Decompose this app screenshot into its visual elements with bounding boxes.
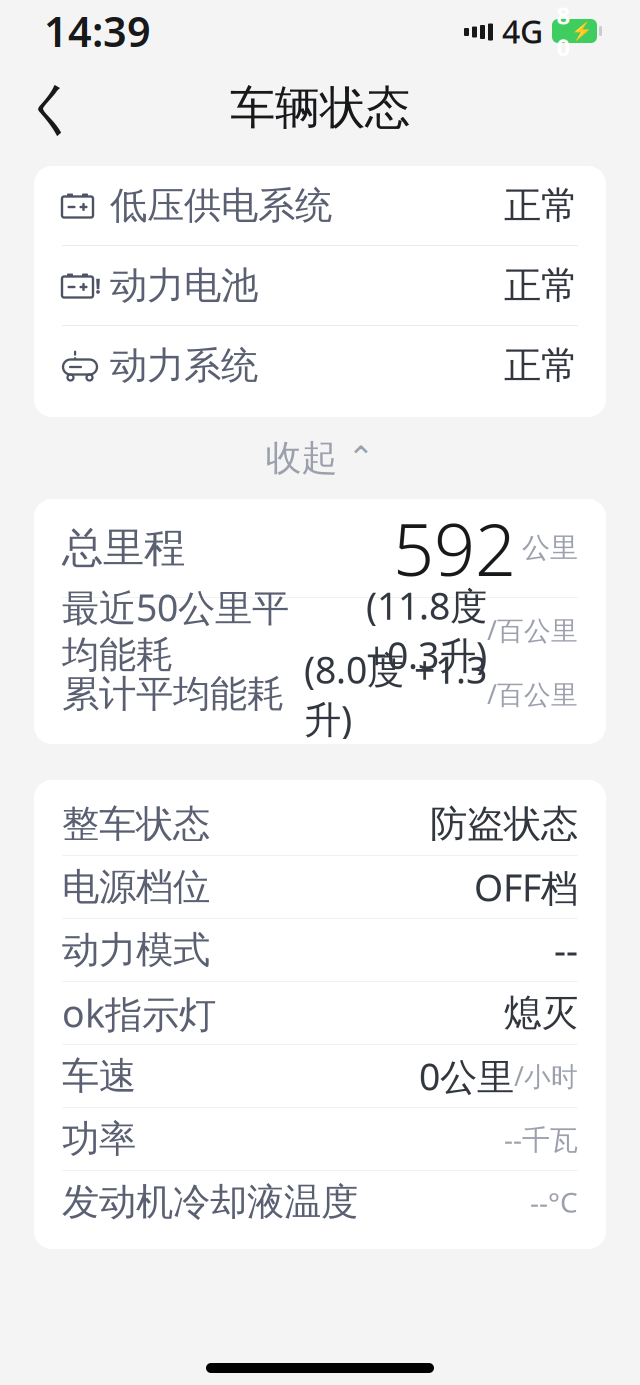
button[interactable]: 整车状态 xyxy=(34,793,606,855)
button[interactable]: 返回 xyxy=(22,76,82,140)
staticText: --°C xyxy=(530,1183,578,1221)
staticText: 公里 xyxy=(522,531,578,565)
staticText: ⚡ xyxy=(570,21,592,41)
staticText: 动力电池 xyxy=(110,263,258,308)
staticText: 4G xyxy=(502,10,543,52)
staticText: 动力系统 xyxy=(110,343,258,388)
button[interactable]: 动力模式 xyxy=(34,919,606,981)
staticText: ok指示灯 xyxy=(62,988,216,1038)
staticText: 熄灭 xyxy=(504,990,578,1036)
staticText: 车辆状态 xyxy=(230,80,410,136)
staticText: 功率 xyxy=(62,1116,136,1162)
button[interactable]: 动力系统 xyxy=(34,326,606,405)
staticText: /小时 xyxy=(514,1058,578,1094)
staticText: 80 xyxy=(556,0,570,63)
staticText: 累计平均能耗 xyxy=(62,671,284,717)
button[interactable]: 发动机冷却液温度 xyxy=(34,1171,606,1233)
button[interactable]: 车速 xyxy=(34,1045,606,1107)
staticText: 车速 xyxy=(62,1053,136,1099)
button[interactable]: 收起 xyxy=(34,417,606,499)
staticText: 0公里 xyxy=(419,1051,514,1101)
staticText: 防盗状态 xyxy=(430,801,578,847)
staticText: 正常 xyxy=(504,263,578,308)
staticText: -- xyxy=(554,925,578,975)
staticText: 592 xyxy=(393,500,516,596)
staticText: /百公里 xyxy=(487,612,578,648)
staticText: 正常 xyxy=(504,183,578,228)
button[interactable]: ok指示灯 xyxy=(34,982,606,1044)
button[interactable]: 最近50公里平均能耗 xyxy=(34,598,606,662)
staticText: 整车状态 xyxy=(62,801,210,847)
button[interactable]: 功率 xyxy=(34,1108,606,1170)
button[interactable]: 总里程 xyxy=(34,499,606,597)
staticText: 总里程 xyxy=(62,523,185,573)
staticText: 14:39 xyxy=(44,4,151,58)
staticText: 最近50公里平均能耗 xyxy=(62,582,289,678)
staticText: く xyxy=(23,74,80,142)
staticText: --千瓦 xyxy=(504,1120,578,1158)
button[interactable]: 电源档位 xyxy=(34,856,606,918)
staticText: 正常 xyxy=(504,343,578,388)
staticText: 电源档位 xyxy=(62,864,210,910)
staticText: OFF档 xyxy=(474,862,578,912)
staticText: (8.0度 +1.3升) xyxy=(304,644,487,744)
staticText: /百公里 xyxy=(487,676,578,712)
staticText: ! xyxy=(95,271,101,300)
staticText: 动力模式 xyxy=(62,927,210,973)
staticText: 发动机冷却液温度 xyxy=(62,1179,358,1225)
staticText: 低压供电系统 xyxy=(110,183,332,228)
button[interactable]: ! xyxy=(34,246,606,325)
staticText: 收起 xyxy=(265,436,337,480)
staticText: (11.8度 +0.3升) xyxy=(366,580,487,680)
staticText: ⌃ xyxy=(347,440,374,476)
button[interactable]: 累计平均能耗 xyxy=(34,662,606,726)
button[interactable]: 低压供电系统 xyxy=(34,166,606,245)
